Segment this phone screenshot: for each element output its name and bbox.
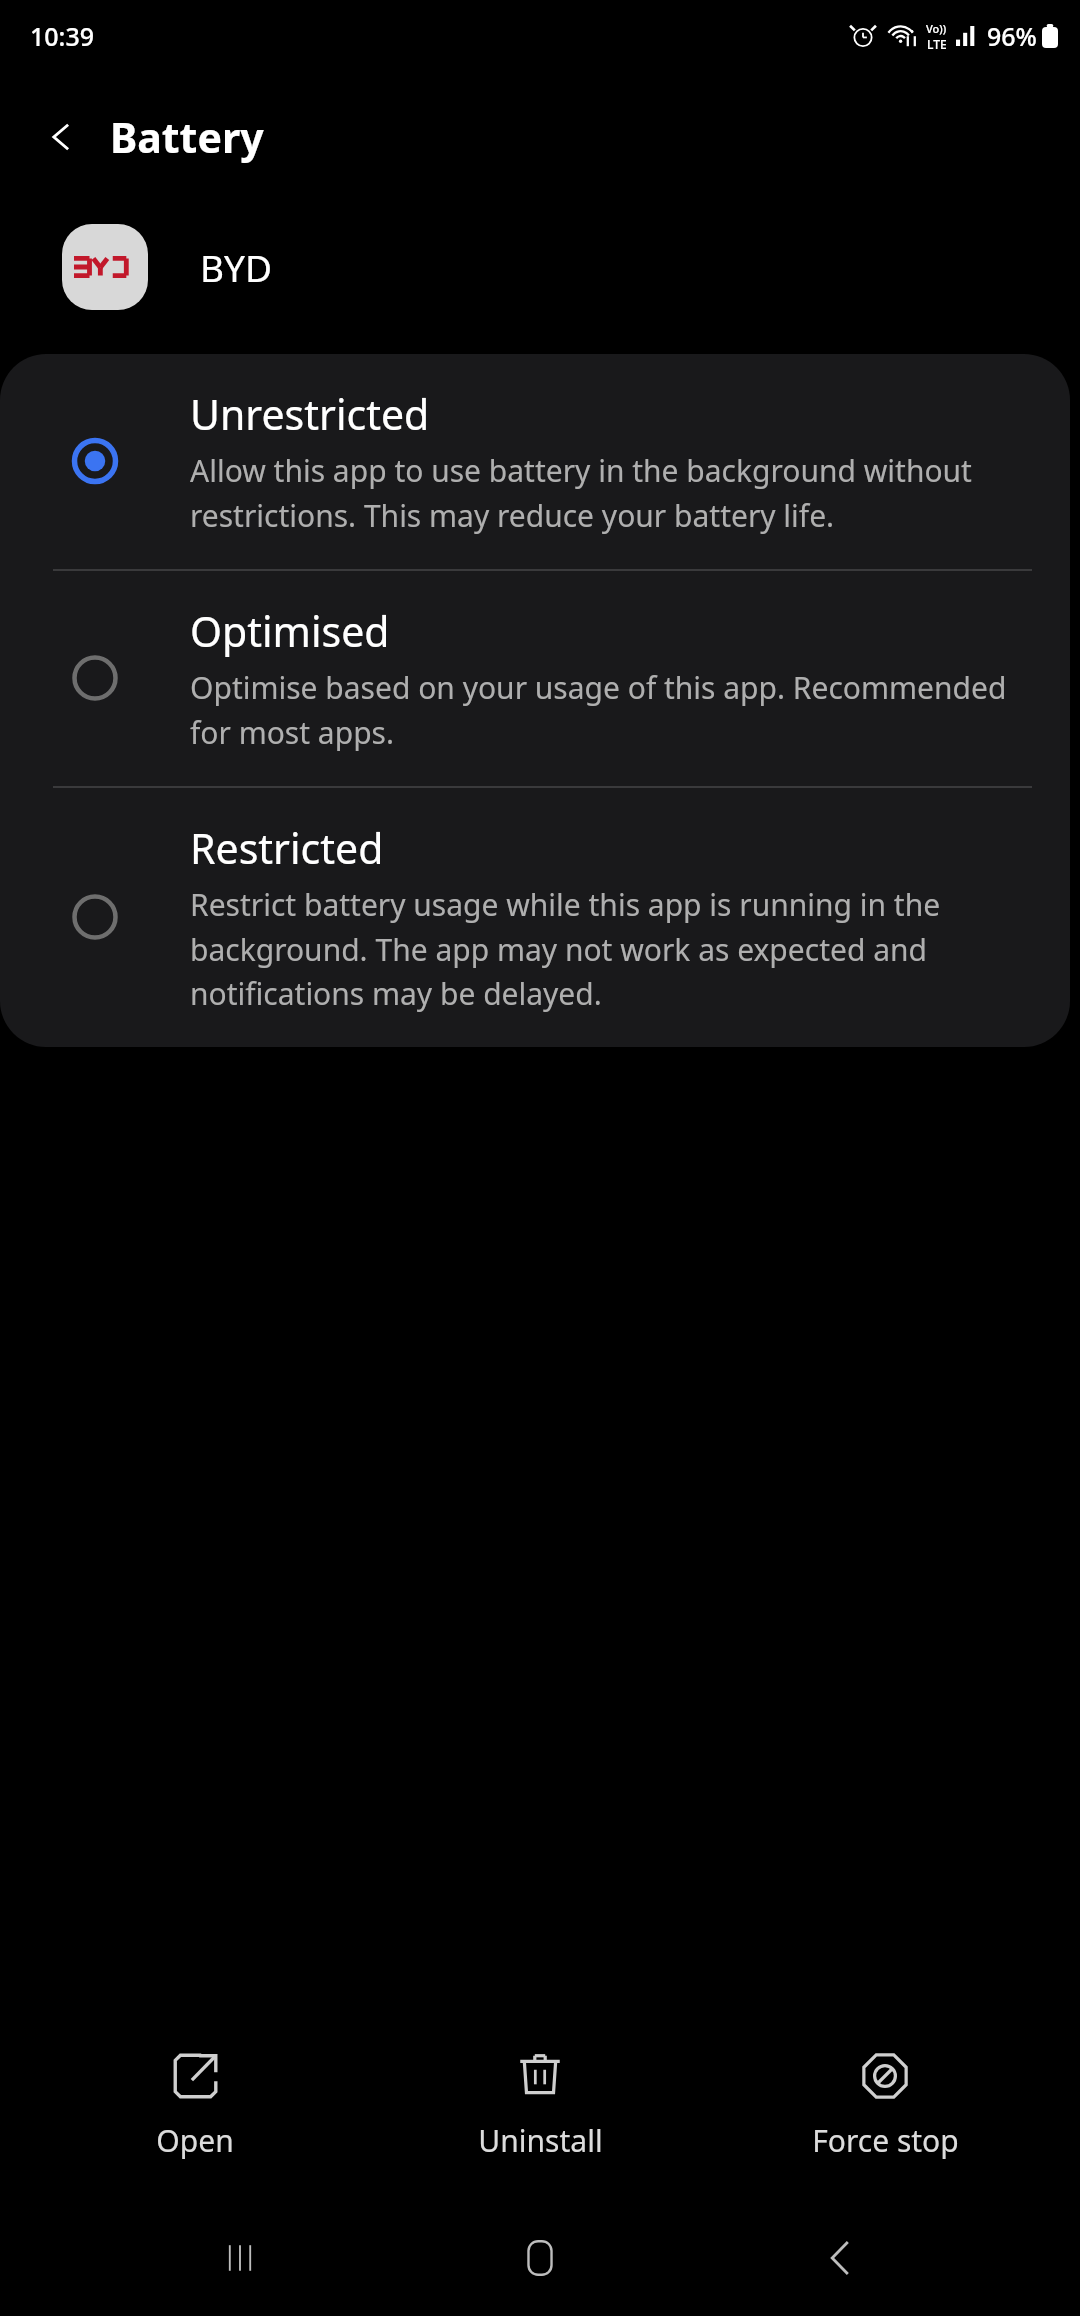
button[interactable]: Unrestricted [0, 354, 1070, 569]
staticText: Vo)) [926, 21, 947, 36]
staticText: Uninstall [478, 2120, 603, 2161]
button[interactable]: Home [480, 2213, 600, 2303]
button[interactable]: Open [45, 2040, 345, 2171]
button[interactable]: Back [780, 2213, 900, 2303]
button[interactable]: Force stop [735, 2040, 1035, 2171]
staticText: LTE [927, 36, 947, 52]
staticText: Optimise based on your usage of this app… [190, 667, 1012, 752]
staticText: Restricted [190, 820, 384, 876]
button[interactable]: BYD [0, 202, 1080, 332]
staticText: 10:39 [30, 19, 95, 53]
staticText: Battery [110, 109, 264, 165]
staticText: Open [156, 2120, 234, 2161]
staticText: Allow this app to use battery in the bac… [190, 450, 1012, 535]
button[interactable]: Back [26, 101, 98, 173]
staticText: Restrict battery usage while this app is… [190, 884, 1012, 1013]
button[interactable]: Optimised [0, 571, 1070, 786]
staticText: Optimised [190, 603, 390, 659]
staticText: BYD [200, 242, 273, 292]
staticText: 96% [987, 19, 1037, 53]
staticText: Unrestricted [190, 386, 430, 442]
staticText: Force stop [812, 2120, 959, 2161]
button[interactable]: Uninstall [390, 2040, 690, 2171]
button[interactable]: Recents [180, 2213, 300, 2303]
button[interactable]: Restricted [0, 788, 1070, 1047]
